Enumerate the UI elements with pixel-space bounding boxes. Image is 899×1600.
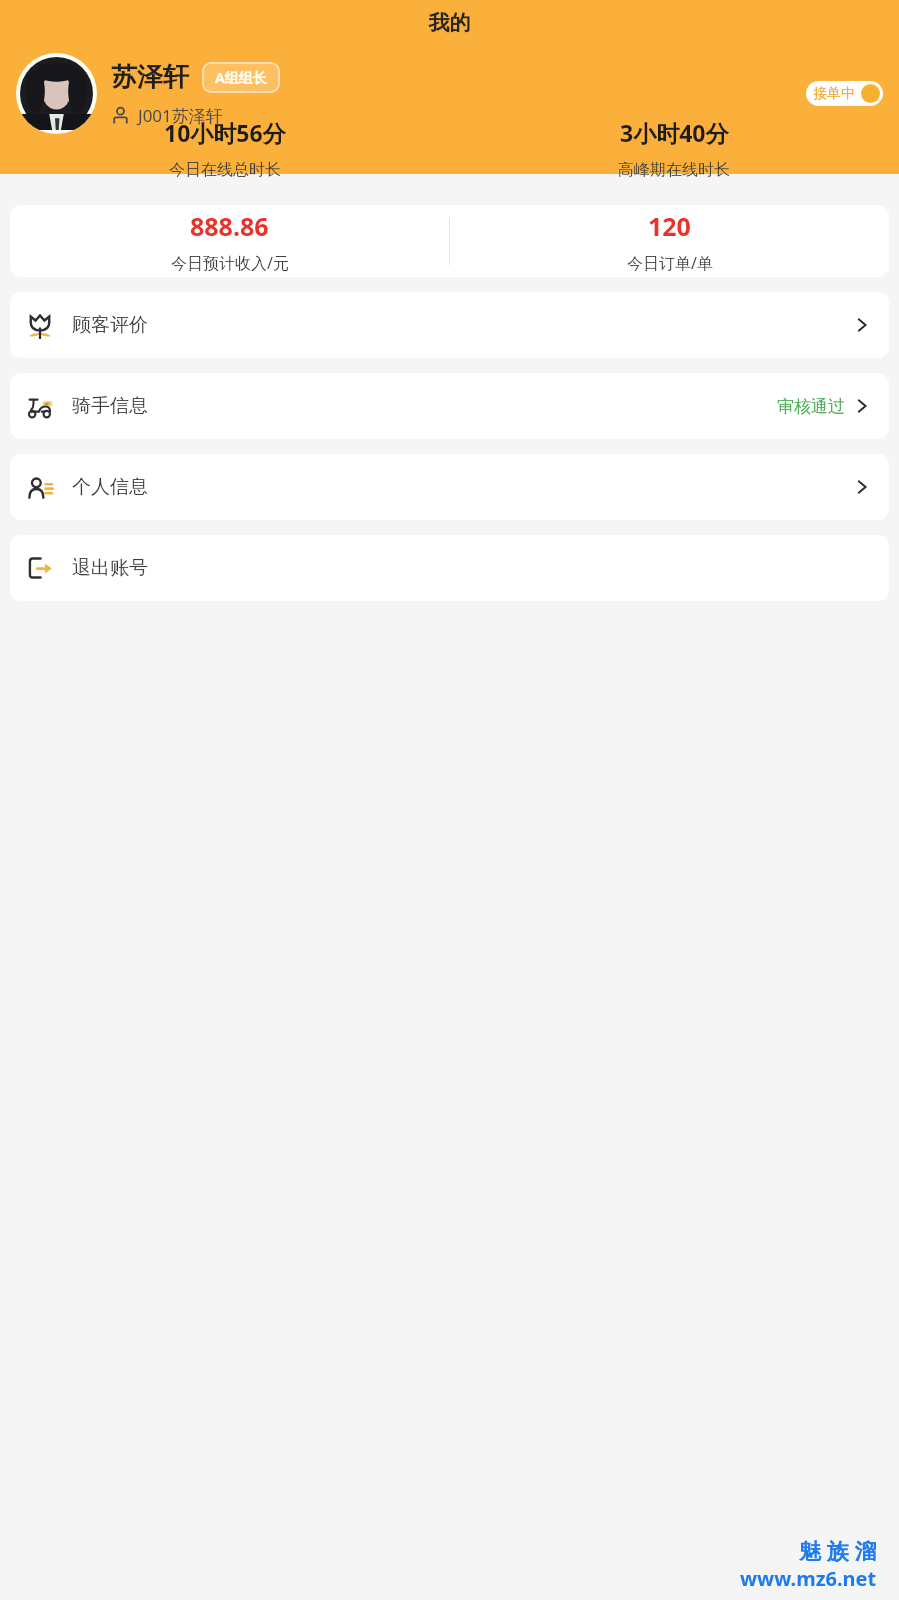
staticText: 顾客评价	[72, 313, 148, 337]
button[interactable]: A组组长	[202, 62, 280, 93]
staticText: 888.86	[190, 209, 269, 243]
button[interactable]: 个人信息	[10, 454, 889, 520]
staticText: 今日在线总时长	[169, 160, 281, 180]
staticText: 我的	[0, 10, 899, 36]
staticText: www.mz6.net	[740, 1565, 877, 1592]
staticText: 3小时40分	[620, 117, 729, 148]
staticText: 退出账号	[72, 556, 148, 580]
staticText: 骑手信息	[72, 394, 148, 418]
staticText: 10小时56分	[164, 117, 286, 148]
staticText: 个人信息	[72, 475, 148, 499]
button[interactable]: Profile photo	[16, 53, 97, 134]
button[interactable]: 接单中	[806, 81, 883, 106]
staticText: 苏泽轩	[111, 61, 189, 94]
staticText: J001苏泽轩	[138, 104, 223, 127]
button[interactable]: 骑手信息	[10, 373, 889, 439]
staticText: A组组长	[215, 68, 267, 87]
staticText: 魅 族 溜	[799, 1535, 877, 1565]
staticText: 今日预计收入/元	[171, 252, 289, 274]
staticText: 接单中	[813, 85, 855, 103]
staticText: 审核通过	[777, 396, 845, 417]
staticText: 120	[648, 209, 691, 243]
staticText: 高峰期在线时长	[618, 160, 730, 180]
button[interactable]: 888.86	[10, 205, 889, 277]
button[interactable]: 顾客评价	[10, 292, 889, 358]
staticText: 今日订单/单	[627, 252, 713, 274]
button[interactable]: 退出账号	[10, 535, 889, 601]
